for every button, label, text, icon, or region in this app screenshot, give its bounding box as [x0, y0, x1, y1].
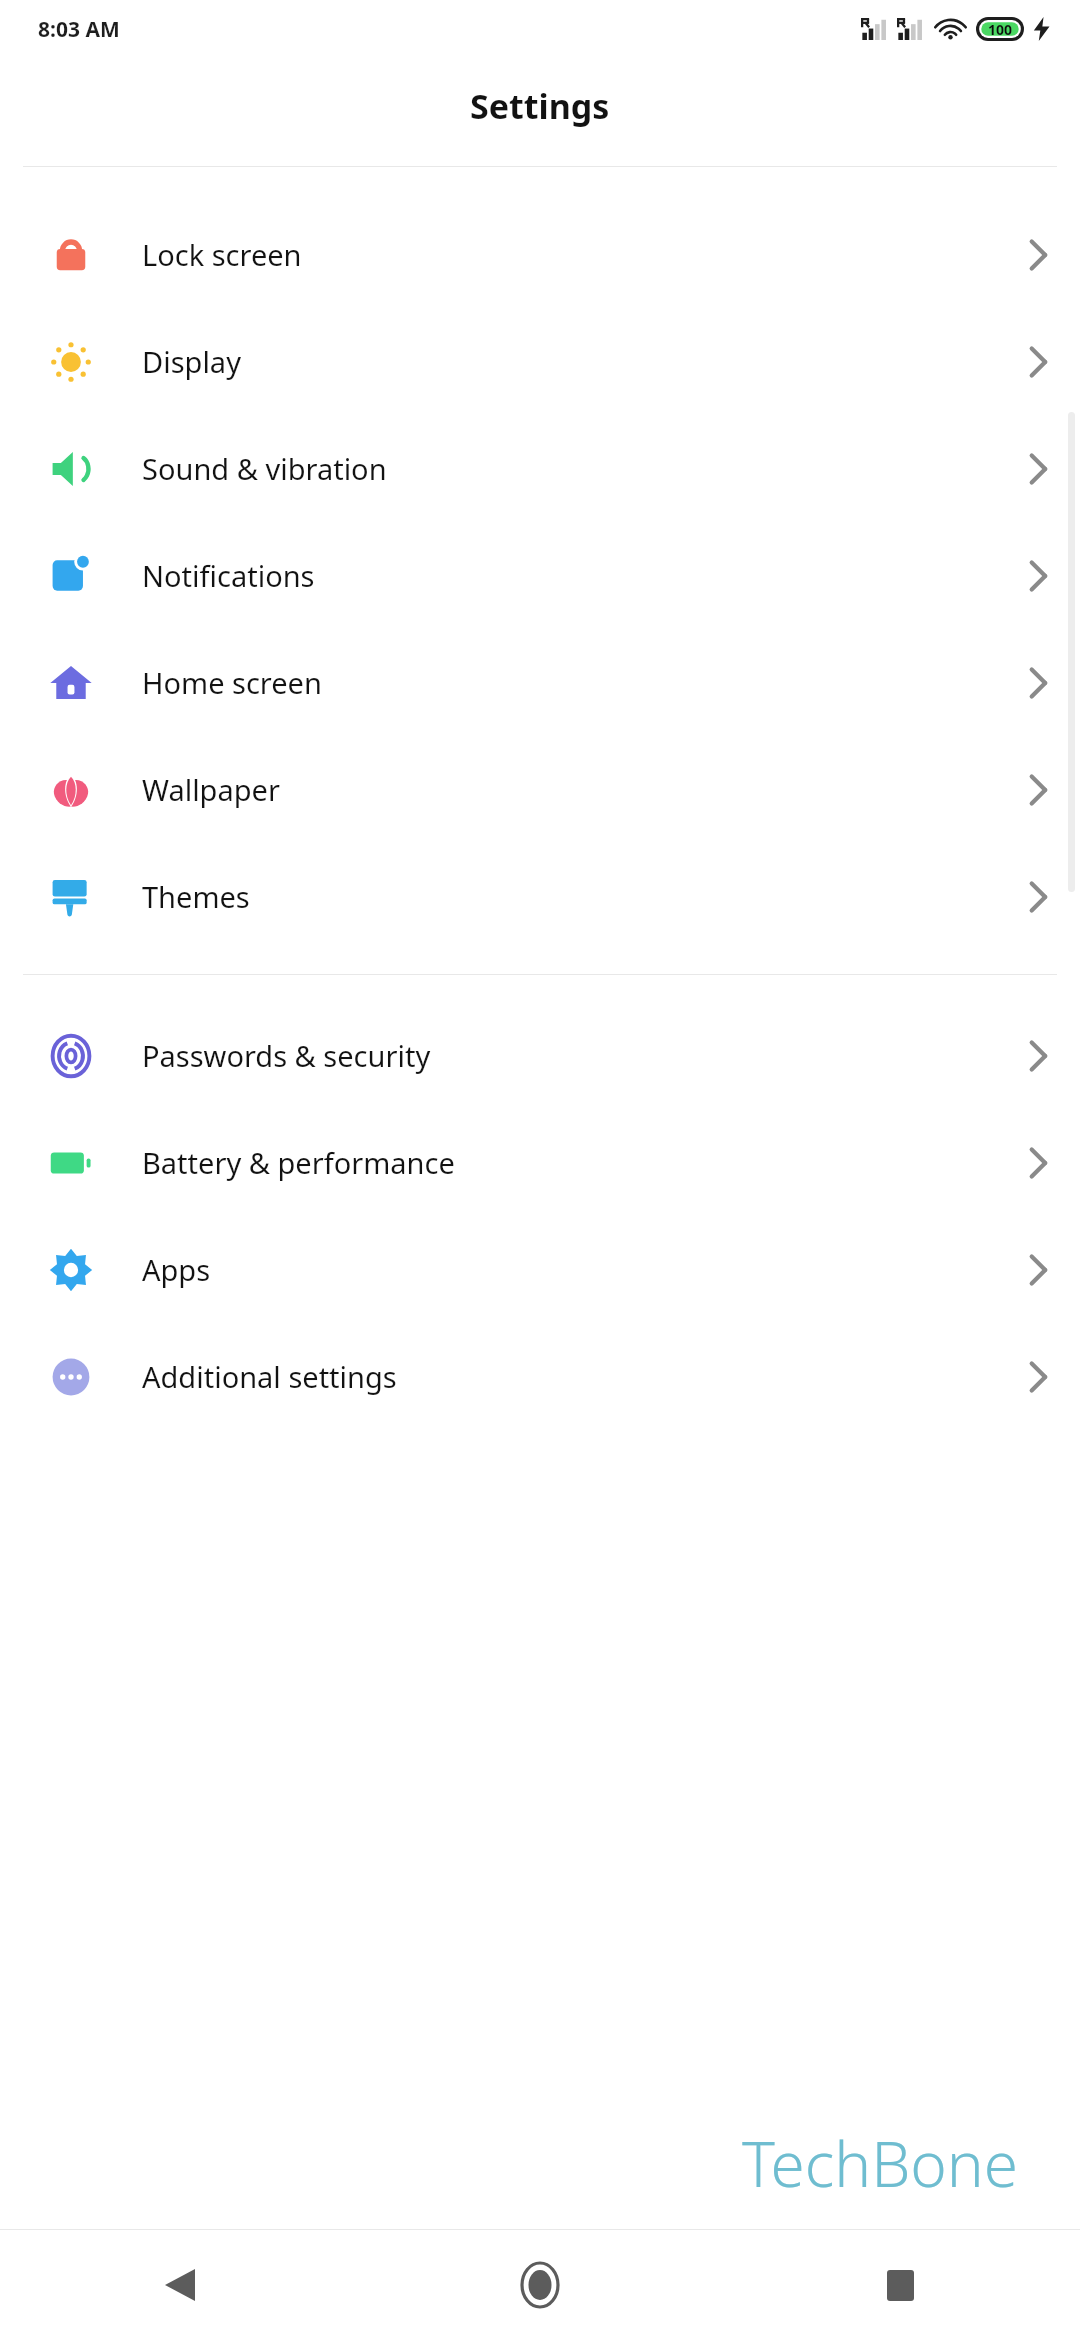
- button[interactable]: Notifications: [0, 522, 1080, 629]
- button[interactable]: Wallpaper: [0, 736, 1080, 843]
- staticText: Battery & performance: [142, 1143, 995, 1182]
- button[interactable]: Sound & vibration: [0, 415, 1080, 522]
- staticText: Settings: [470, 83, 610, 129]
- button[interactable]: Back: [0, 2230, 360, 2340]
- staticText: Wallpaper: [142, 770, 995, 809]
- staticText: 100: [988, 20, 1013, 39]
- button[interactable]: Additional settings: [0, 1323, 1080, 1430]
- button[interactable]: Apps: [0, 1216, 1080, 1323]
- staticText: Notifications: [142, 556, 995, 595]
- staticText: TechBone: [742, 2121, 1018, 2205]
- button[interactable]: Themes: [0, 843, 1080, 950]
- staticText: Home screen: [142, 663, 995, 702]
- button[interactable]: Passwords & security: [0, 1002, 1080, 1109]
- button[interactable]: Home screen: [0, 629, 1080, 736]
- button[interactable]: Recent apps: [720, 2230, 1080, 2340]
- button[interactable]: Display: [0, 308, 1080, 415]
- staticText: 8:03 AM: [38, 15, 120, 44]
- button[interactable]: Lock screen: [0, 201, 1080, 308]
- button[interactable]: Home: [360, 2230, 720, 2340]
- staticText: Apps: [142, 1250, 995, 1289]
- staticText: Themes: [142, 877, 995, 916]
- staticText: Display: [142, 342, 995, 381]
- staticText: Additional settings: [142, 1357, 995, 1396]
- staticText: Sound & vibration: [142, 449, 995, 488]
- staticText: Lock screen: [142, 235, 995, 274]
- staticText: Passwords & security: [142, 1036, 995, 1075]
- button[interactable]: Battery & performance: [0, 1109, 1080, 1216]
